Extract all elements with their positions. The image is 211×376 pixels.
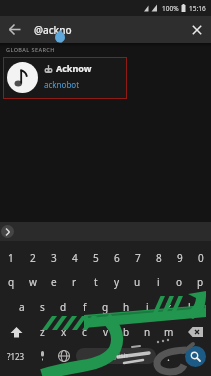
- button[interactable]: m: [158, 320, 179, 344]
- button[interactable]: w: [22, 270, 43, 294]
- button[interactable]: 9: [169, 246, 190, 270]
- staticText: d: [60, 300, 67, 314]
- button[interactable]: ?123: [0, 344, 32, 368]
- button[interactable]: [183, 16, 211, 43]
- staticText: y: [114, 275, 120, 289]
- button[interactable]: q: [0, 270, 22, 294]
- staticText: w: [29, 275, 37, 289]
- staticText: p: [197, 275, 204, 289]
- staticText: 6: [114, 251, 120, 265]
- button[interactable]: l: [179, 295, 200, 319]
- button[interactable]: 4: [64, 246, 85, 270]
- button[interactable]: 5: [85, 246, 106, 270]
- button[interactable]: English: [76, 348, 156, 364]
- button[interactable]: e: [43, 270, 64, 294]
- staticText: f: [83, 300, 87, 314]
- button[interactable]: o: [169, 270, 190, 294]
- button[interactable]: 2: [22, 246, 43, 270]
- button[interactable]: 7: [127, 246, 148, 270]
- staticText: 8: [156, 251, 162, 265]
- staticText: ?123: [7, 351, 25, 362]
- staticText: e: [51, 275, 57, 289]
- button[interactable]: r: [64, 270, 85, 294]
- button[interactable]: 1: [0, 246, 22, 270]
- staticText: 1: [8, 251, 14, 265]
- staticText: 7: [135, 251, 141, 265]
- staticText: j: [146, 300, 149, 314]
- staticText: 100%: [162, 4, 179, 13]
- staticText: 3: [51, 251, 57, 265]
- button[interactable]: p: [190, 270, 211, 294]
- button[interactable]: [1, 225, 14, 238]
- button[interactable]: z: [32, 320, 53, 344]
- staticText: @ackno: [34, 23, 72, 37]
- staticText: c: [82, 325, 87, 339]
- button[interactable]: [32, 344, 53, 368]
- button[interactable]: d: [53, 295, 74, 319]
- staticText: .: [167, 349, 170, 364]
- staticText: 0: [198, 251, 204, 265]
- staticText: 15:16: [189, 4, 206, 13]
- button[interactable]: f: [74, 295, 95, 319]
- button[interactable]: [179, 320, 211, 344]
- staticText: 9: [177, 251, 183, 265]
- button[interactable]: t: [85, 270, 106, 294]
- staticText: g: [102, 300, 109, 314]
- button[interactable]: i: [148, 270, 169, 294]
- staticText: v: [103, 325, 109, 339]
- staticText: u: [134, 275, 141, 289]
- staticText: z: [40, 325, 45, 339]
- button[interactable]: [179, 344, 211, 368]
- button[interactable]: [0, 320, 32, 344]
- button[interactable]: 0: [190, 246, 211, 270]
- staticText: o: [176, 275, 183, 289]
- staticText: 2: [30, 251, 36, 265]
- button[interactable]: h: [116, 295, 137, 319]
- button[interactable]: s: [32, 295, 53, 319]
- button[interactable]: g: [95, 295, 116, 319]
- button[interactable]: v: [95, 320, 116, 344]
- staticText: GLOBAL SEARCH: [6, 46, 55, 53]
- staticText: b: [123, 325, 130, 339]
- button[interactable]: x: [53, 320, 74, 344]
- staticText: 4: [72, 251, 78, 265]
- button[interactable]: k: [158, 295, 179, 319]
- staticText: m: [164, 325, 174, 339]
- button[interactable]: y: [106, 270, 127, 294]
- button[interactable]: 8: [148, 246, 169, 270]
- button[interactable]: j: [137, 295, 158, 319]
- staticText: r: [72, 275, 77, 289]
- button[interactable]: b: [116, 320, 137, 344]
- staticText: t: [94, 275, 98, 289]
- button[interactable]: a: [11, 295, 32, 319]
- button[interactable]: 3: [43, 246, 64, 270]
- staticText: h: [123, 300, 130, 314]
- staticText: x: [61, 325, 67, 339]
- button[interactable]: u: [127, 270, 148, 294]
- button[interactable]: [0, 16, 30, 43]
- staticText: k: [166, 300, 172, 314]
- staticText: a: [19, 300, 25, 314]
- staticText: acknobot: [44, 79, 80, 90]
- button[interactable]: Acknow: [3, 57, 127, 99]
- staticText: 5: [93, 251, 99, 265]
- staticText: i: [157, 275, 160, 289]
- staticText: n: [144, 325, 151, 339]
- button[interactable]: .: [158, 344, 179, 368]
- button[interactable]: n: [137, 320, 158, 344]
- button[interactable]: [53, 344, 74, 368]
- staticText: Acknow: [56, 62, 92, 74]
- staticText: s: [40, 300, 45, 314]
- button[interactable]: 6: [106, 246, 127, 270]
- staticText: q: [8, 275, 15, 289]
- staticText: English: [104, 351, 128, 361]
- staticText: l: [188, 300, 191, 314]
- button[interactable]: c: [74, 320, 95, 344]
